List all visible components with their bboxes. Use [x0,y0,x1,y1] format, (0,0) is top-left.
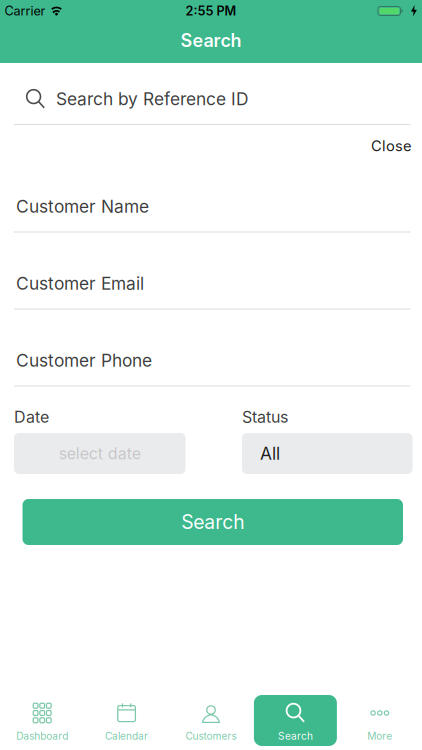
staticText: Close [371,137,412,155]
button[interactable]: Search [0,499,422,545]
staticText: More [367,730,392,742]
staticText: Customers [185,730,236,742]
button[interactable]: Customers [169,695,253,750]
staticText: Search [278,730,313,742]
staticText: Carrier [4,3,45,19]
staticText: Status [242,407,288,427]
staticText: Search [180,30,241,51]
button[interactable]: Close [371,137,412,155]
staticText: Dashboard [16,730,68,742]
button[interactable]: Search [253,695,338,750]
staticText: Calendar [105,730,148,742]
staticText: Customer Phone [16,350,152,371]
button[interactable]: More [338,695,422,750]
staticText: Search [181,510,244,534]
button[interactable]: select date [14,433,185,474]
button[interactable]: Search by Reference ID [0,63,422,111]
staticText: All [260,443,280,464]
button[interactable]: Dashboard [0,695,84,750]
staticText: Search by Reference ID [56,88,249,109]
button[interactable]: Calendar [84,695,169,750]
staticText: select date [59,444,141,463]
staticText: Customer Email [16,273,144,294]
button[interactable]: All [242,433,412,474]
staticText: Customer Name [16,196,149,217]
staticText: 2:55 PM [185,3,236,19]
staticText: Date [14,407,49,427]
